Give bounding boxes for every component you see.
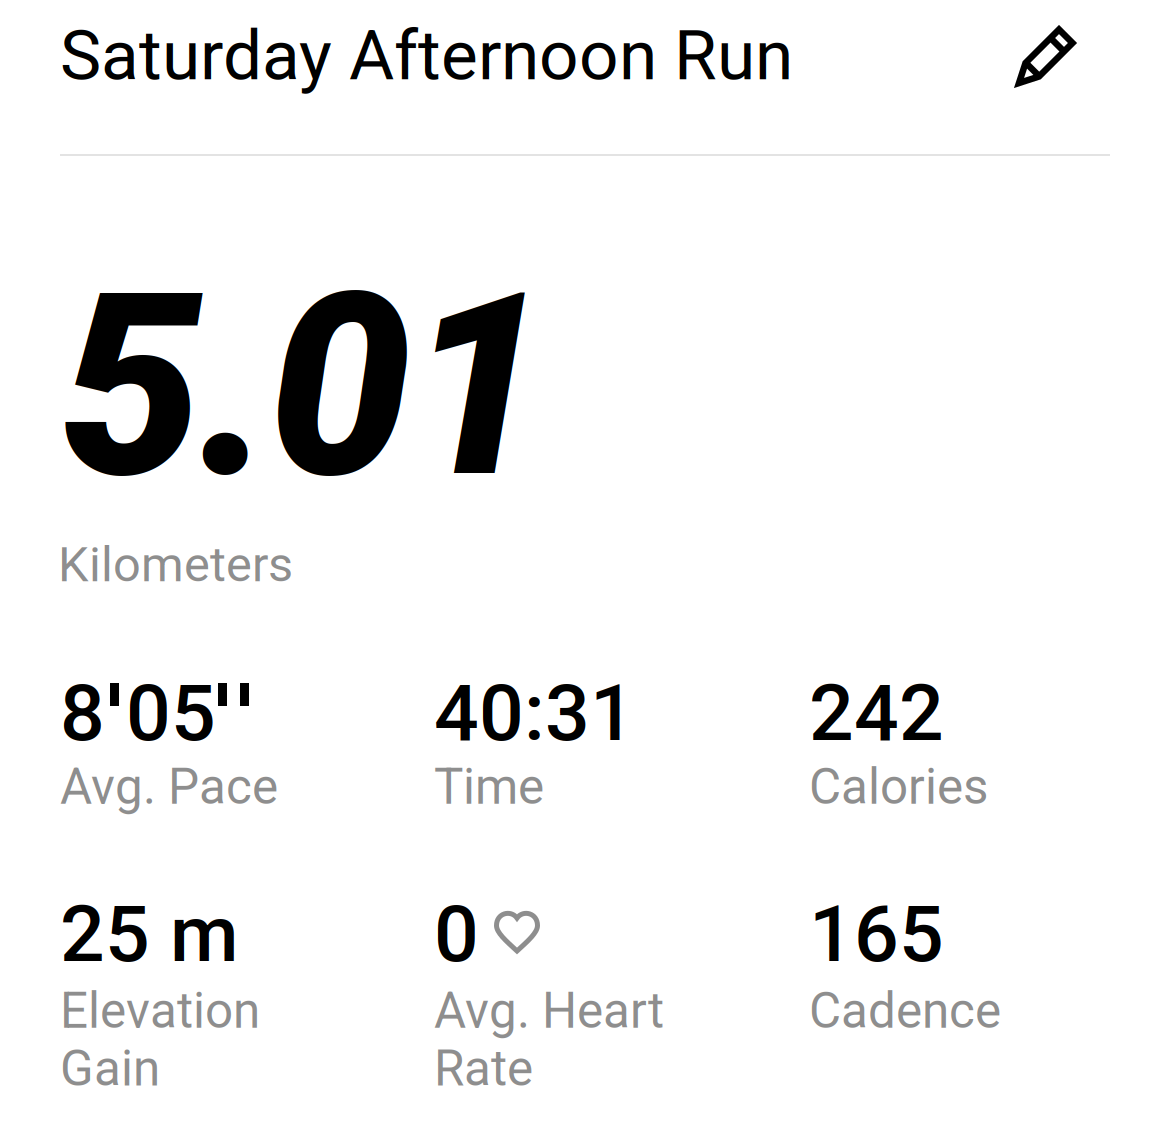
button[interactable]: 25 m <box>60 888 400 1078</box>
button[interactable]: 242 <box>809 667 1149 857</box>
button[interactable]: 0 <box>434 888 774 1078</box>
staticText: Elevation Gain <box>60 982 260 1098</box>
staticText: 165 <box>809 888 944 980</box>
button[interactable]: 165 <box>809 888 1149 1078</box>
staticText: 40:31 <box>434 667 635 759</box>
staticText: Cadence <box>809 982 1001 1040</box>
staticText: Kilometers <box>58 536 293 593</box>
button[interactable]: Edit activity name <box>1002 11 1090 99</box>
staticText: Saturday Afternoon Run <box>60 15 793 96</box>
staticText: 25 m <box>60 888 239 980</box>
staticText: Avg. Pace <box>60 758 278 816</box>
button[interactable]: Saturday Afternoon Run <box>60 15 793 96</box>
staticText: 0 <box>434 888 479 980</box>
staticText: 5.01 <box>60 238 549 535</box>
staticText: Calories <box>809 758 988 816</box>
staticText: Avg. Heart Rate <box>434 982 664 1098</box>
button[interactable]: 8 <box>60 667 400 857</box>
staticText: Time <box>434 758 544 816</box>
button[interactable]: 40:31 <box>434 667 774 857</box>
staticText: 242 <box>809 667 944 759</box>
staticText: 05 <box>126 667 216 759</box>
staticText: 8 <box>60 667 105 759</box>
